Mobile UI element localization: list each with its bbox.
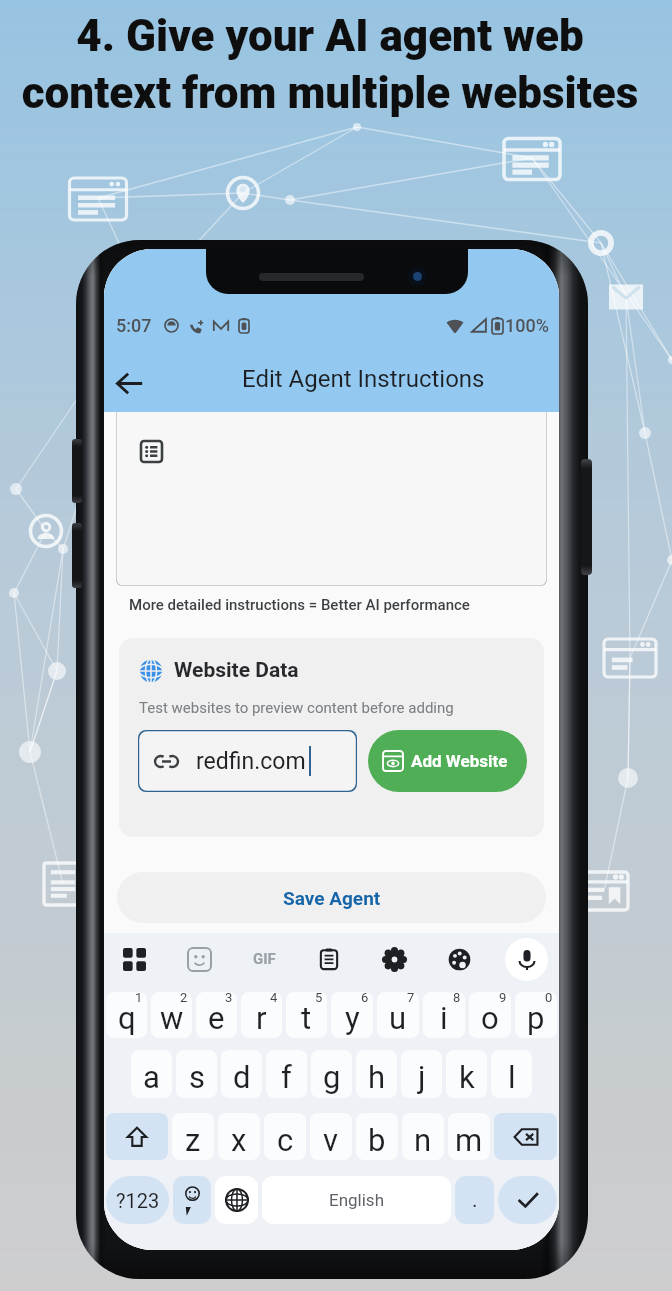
- button[interactable]: Clipboard: [310, 940, 348, 978]
- button[interactable]: Stickers: [180, 940, 218, 978]
- staticText: n: [414, 1122, 432, 1158]
- staticText: 3: [225, 992, 233, 1005]
- button[interactable]: g: [311, 1050, 352, 1098]
- button[interactable]: Shift: [106, 1113, 168, 1160]
- staticText: d: [233, 1059, 251, 1095]
- staticText: f: [281, 1059, 292, 1095]
- button[interactable]: Themes: [440, 940, 478, 978]
- staticText: b: [368, 1122, 386, 1158]
- button[interactable]: s: [176, 1050, 217, 1098]
- button[interactable]: l: [491, 1050, 532, 1098]
- button[interactable]: i: [423, 992, 465, 1038]
- staticText: v: [323, 1122, 339, 1158]
- button[interactable]: Backspace: [494, 1113, 557, 1160]
- staticText: ?123: [116, 1189, 160, 1212]
- button[interactable]: z: [172, 1113, 214, 1160]
- staticText: t: [301, 1000, 312, 1036]
- button[interactable]: y: [331, 992, 373, 1038]
- staticText: 7: [407, 992, 415, 1005]
- button[interactable]: English: [262, 1176, 451, 1224]
- button[interactable]: f: [266, 1050, 307, 1098]
- staticText: y: [345, 1000, 360, 1036]
- staticText: 1: [135, 992, 143, 1005]
- button[interactable]: v: [310, 1113, 352, 1160]
- staticText: z: [185, 1122, 201, 1158]
- button[interactable]: Add Website: [368, 730, 527, 792]
- button[interactable]: q: [106, 992, 147, 1038]
- button[interactable]: Settings: [375, 940, 413, 978]
- button[interactable]: Apps: [115, 940, 153, 978]
- button[interactable]: t: [286, 992, 327, 1038]
- staticText: i: [440, 1000, 448, 1036]
- button[interactable]: Enter: [498, 1176, 557, 1224]
- button[interactable]: Back: [105, 359, 153, 407]
- button[interactable]: redfin.com: [138, 730, 357, 792]
- staticText: 8: [453, 992, 461, 1005]
- staticText: k: [459, 1059, 475, 1095]
- staticText: w: [160, 1000, 184, 1036]
- staticText: Website Data: [174, 658, 299, 683]
- button[interactable]: x: [218, 1113, 260, 1160]
- button[interactable]: u: [377, 992, 419, 1038]
- button[interactable]: Emoji: [173, 1176, 211, 1224]
- staticText: Test websites to preview content before …: [139, 699, 454, 717]
- staticText: g: [323, 1059, 341, 1095]
- staticText: Edit Agent Instructions: [242, 365, 485, 393]
- staticText: 4. Give your AI agent web context from m…: [6, 10, 654, 119]
- staticText: p: [527, 1000, 545, 1036]
- staticText: 5:07: [116, 315, 152, 336]
- staticText: 9: [499, 992, 507, 1005]
- staticText: x: [231, 1122, 247, 1158]
- staticText: j: [418, 1059, 426, 1095]
- staticText: GIF: [253, 950, 276, 968]
- button[interactable]: Voice input: [505, 938, 548, 981]
- staticText: u: [389, 1000, 407, 1036]
- button[interactable]: [116, 349, 547, 586]
- button[interactable]: b: [356, 1113, 398, 1160]
- button[interactable]: j: [401, 1050, 442, 1098]
- staticText: e: [208, 1000, 225, 1036]
- staticText: More detailed instructions = Better AI p…: [129, 596, 470, 614]
- button[interactable]: .: [455, 1176, 494, 1224]
- button[interactable]: a: [131, 1050, 172, 1098]
- button[interactable]: m: [448, 1113, 490, 1160]
- staticText: 5: [315, 992, 323, 1005]
- button[interactable]: Language: [215, 1176, 258, 1224]
- button[interactable]: p: [515, 992, 557, 1038]
- staticText: o: [481, 1000, 499, 1036]
- staticText: 4: [270, 992, 278, 1005]
- button[interactable]: ?123: [106, 1176, 169, 1224]
- staticText: q: [118, 1000, 136, 1036]
- staticText: Save Agent: [283, 887, 381, 909]
- staticText: Add Website: [411, 751, 508, 771]
- staticText: s: [189, 1059, 205, 1095]
- button[interactable]: o: [469, 992, 511, 1038]
- staticText: .: [472, 1188, 478, 1213]
- button[interactable]: Save Agent: [117, 872, 546, 923]
- staticText: h: [368, 1059, 386, 1095]
- button[interactable]: k: [446, 1050, 487, 1098]
- button[interactable]: d: [221, 1050, 262, 1098]
- staticText: 6: [361, 992, 369, 1005]
- staticText: 2: [180, 992, 188, 1005]
- button[interactable]: e: [196, 992, 237, 1038]
- button[interactable]: w: [151, 992, 192, 1038]
- staticText: r: [256, 1000, 267, 1036]
- staticText: English: [329, 1190, 385, 1210]
- button[interactable]: c: [264, 1113, 306, 1160]
- staticText: a: [143, 1059, 160, 1095]
- staticText: 0: [545, 992, 553, 1005]
- staticText: l: [508, 1059, 516, 1095]
- button[interactable]: r: [241, 992, 282, 1038]
- staticText: m: [455, 1122, 483, 1158]
- button[interactable]: n: [402, 1113, 444, 1160]
- button[interactable]: GIF: [245, 940, 283, 978]
- staticText: 100%: [505, 315, 549, 336]
- button[interactable]: h: [356, 1050, 397, 1098]
- staticText: redfin.com: [196, 748, 306, 775]
- staticText: c: [277, 1122, 294, 1158]
